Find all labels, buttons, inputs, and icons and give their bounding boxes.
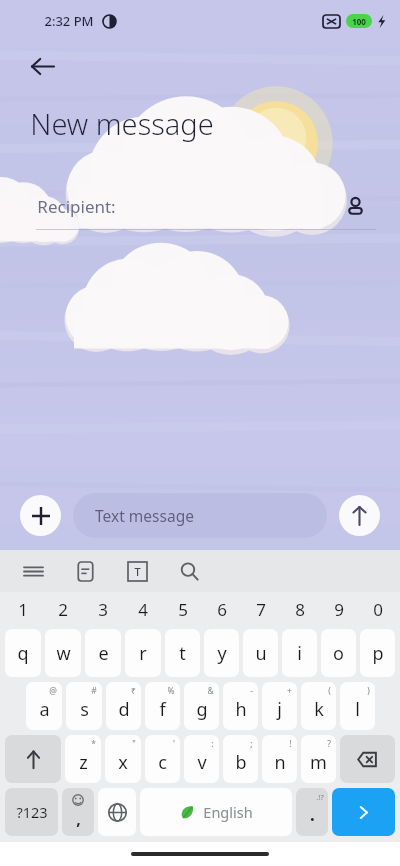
button[interactable]: Back bbox=[18, 42, 66, 90]
button[interactable]: ) bbox=[340, 682, 375, 730]
staticText: # bbox=[91, 685, 97, 697]
button[interactable]: e bbox=[85, 629, 121, 677]
staticText: 5 bbox=[178, 598, 188, 621]
button[interactable]: t bbox=[165, 629, 200, 677]
staticText: z bbox=[79, 750, 88, 775]
staticText: & bbox=[207, 685, 214, 697]
staticText: n bbox=[274, 750, 286, 775]
staticText: 9 bbox=[334, 598, 344, 621]
button[interactable]: : bbox=[184, 735, 219, 783]
staticText: m bbox=[310, 750, 327, 775]
button[interactable]: # bbox=[66, 682, 102, 730]
button[interactable]: 3 bbox=[83, 592, 123, 626]
button[interactable]: 1 bbox=[3, 592, 43, 626]
staticText: t bbox=[179, 641, 186, 666]
button[interactable]: ( bbox=[301, 682, 336, 730]
staticText: j bbox=[277, 697, 282, 722]
button[interactable]: ₹ bbox=[106, 682, 141, 730]
staticText: 0 bbox=[373, 598, 383, 621]
button[interactable]: Text formatting bbox=[118, 552, 156, 590]
staticText: o bbox=[333, 641, 344, 666]
staticText: 2:32 PM bbox=[44, 12, 94, 30]
button[interactable]: ; bbox=[223, 735, 258, 783]
staticText: u bbox=[255, 641, 267, 666]
button[interactable]: Text message bbox=[73, 493, 327, 538]
button[interactable]: ' bbox=[145, 735, 180, 783]
button[interactable]: y bbox=[204, 629, 239, 677]
button[interactable]: @ bbox=[26, 682, 62, 730]
button[interactable]: 9 bbox=[319, 592, 358, 626]
button[interactable]: Change language bbox=[98, 788, 136, 836]
button[interactable]: * bbox=[65, 735, 101, 783]
button[interactable]: w bbox=[45, 629, 81, 677]
staticText: .!? bbox=[316, 792, 324, 802]
button[interactable]: i bbox=[282, 629, 317, 677]
staticText: ! bbox=[289, 738, 292, 750]
button[interactable]: 7 bbox=[241, 592, 280, 626]
staticText: @ bbox=[49, 685, 57, 697]
button[interactable]: 6 bbox=[202, 592, 241, 626]
button[interactable]: q bbox=[5, 629, 41, 677]
staticText: h bbox=[235, 697, 247, 722]
button[interactable]: & bbox=[184, 682, 219, 730]
staticText: : bbox=[211, 738, 214, 750]
button[interactable]: Recipient: bbox=[0, 183, 400, 229]
staticText: - bbox=[250, 685, 253, 697]
button[interactable]: ? bbox=[301, 735, 336, 783]
staticText: ? bbox=[327, 738, 331, 750]
button[interactable]: r bbox=[125, 629, 161, 677]
button[interactable]: 8 bbox=[280, 592, 319, 626]
button[interactable]: + bbox=[262, 682, 297, 730]
staticText: ) bbox=[367, 685, 370, 697]
button[interactable]: o bbox=[321, 629, 356, 677]
button[interactable]: Shift bbox=[5, 735, 61, 783]
button[interactable]: Period bbox=[296, 788, 328, 836]
staticText: c bbox=[158, 750, 167, 775]
button[interactable]: Add contact bbox=[338, 189, 372, 223]
staticText: % bbox=[167, 685, 175, 697]
button[interactable]: Send bbox=[339, 495, 380, 536]
button[interactable]: ?123 bbox=[5, 788, 58, 836]
button[interactable]: Send message bbox=[332, 788, 395, 836]
staticText: e bbox=[98, 641, 109, 666]
button[interactable]: English bbox=[140, 788, 292, 836]
staticText: k bbox=[314, 697, 324, 722]
button[interactable]: 2 bbox=[43, 592, 83, 626]
button[interactable]: " bbox=[105, 735, 141, 783]
button[interactable]: u bbox=[243, 629, 278, 677]
staticText: 1 bbox=[18, 598, 28, 621]
button[interactable]: Emoji and comma bbox=[62, 788, 94, 836]
staticText: Text message bbox=[95, 505, 194, 526]
staticText: Recipient: bbox=[37, 195, 116, 218]
button[interactable]: p bbox=[360, 629, 395, 677]
staticText: i bbox=[297, 641, 302, 666]
staticText: 6 bbox=[217, 598, 227, 621]
button[interactable]: % bbox=[145, 682, 180, 730]
button[interactable]: 0 bbox=[358, 592, 397, 626]
staticText: T bbox=[134, 564, 141, 579]
staticText: " bbox=[132, 738, 136, 750]
staticText: 100 bbox=[352, 16, 366, 27]
staticText: ; bbox=[250, 738, 253, 750]
button[interactable]: Menu bbox=[14, 552, 52, 590]
button[interactable]: Add attachment bbox=[20, 495, 61, 536]
staticText: , bbox=[76, 808, 81, 830]
staticText: l bbox=[355, 697, 360, 722]
staticText: ₹ bbox=[131, 685, 136, 697]
button[interactable]: ! bbox=[262, 735, 297, 783]
button[interactable]: 4 bbox=[123, 592, 163, 626]
button[interactable]: Backspace bbox=[340, 735, 395, 783]
staticText: 3 bbox=[98, 598, 108, 621]
button[interactable]: Search bbox=[170, 552, 208, 590]
staticText: a bbox=[39, 697, 50, 722]
button[interactable]: 5 bbox=[163, 592, 202, 626]
staticText: g bbox=[196, 697, 208, 722]
staticText: v bbox=[197, 750, 207, 775]
staticText: + bbox=[287, 685, 292, 697]
button[interactable]: - bbox=[223, 682, 258, 730]
staticText: f bbox=[159, 697, 166, 722]
staticText: New message bbox=[30, 104, 214, 143]
staticText: 4 bbox=[138, 598, 148, 621]
staticText: b bbox=[235, 750, 247, 775]
button[interactable]: Clipboard bbox=[66, 552, 104, 590]
